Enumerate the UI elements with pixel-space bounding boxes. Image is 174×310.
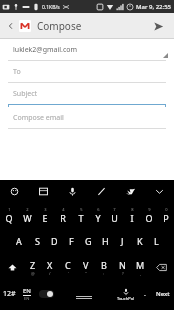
button[interactable]: Next <box>151 280 174 308</box>
staticText: " <box>85 271 87 276</box>
staticText: 12# <box>3 289 16 299</box>
staticText: Subject <box>13 89 38 99</box>
button[interactable]: L <box>148 228 165 254</box>
button[interactable]: S <box>28 228 46 254</box>
button[interactable]: 1 <box>0 202 18 228</box>
staticText: Q <box>5 212 13 224</box>
staticText: S <box>35 235 40 247</box>
button[interactable]: Backspace <box>149 254 174 280</box>
button[interactable]: N <box>113 254 131 280</box>
button[interactable]: Twitter <box>116 180 145 202</box>
button[interactable]: Space <box>56 280 112 308</box>
staticText: L <box>154 235 159 247</box>
staticText: B <box>101 259 107 271</box>
button[interactable]: 6 <box>89 202 106 228</box>
staticText: O <box>145 212 153 224</box>
staticText: 1 <box>8 207 11 212</box>
button[interactable]: D <box>46 228 63 254</box>
button[interactable]: Back <box>4 19 18 33</box>
staticText: E <box>42 212 48 224</box>
button[interactable]: C <box>59 254 77 280</box>
button[interactable]: K <box>131 228 148 254</box>
staticText: P <box>163 212 169 224</box>
staticText: @ <box>31 271 35 276</box>
staticText: / <box>49 271 51 276</box>
button[interactable]: M <box>131 254 149 280</box>
button[interactable]: 0 <box>157 202 174 228</box>
staticText: 3 <box>44 207 47 212</box>
staticText: W <box>23 212 32 224</box>
button[interactable]: 12# <box>0 280 18 308</box>
staticText: ? <box>122 271 124 276</box>
staticText: 5 <box>80 207 83 212</box>
button[interactable]: Toggle <box>36 280 56 308</box>
staticText: D <box>51 235 58 247</box>
staticText: EN <box>23 287 31 295</box>
staticText: 0.1KB/s <box>42 4 60 11</box>
button[interactable]: To <box>0 61 174 82</box>
staticText: C <box>65 259 71 271</box>
button[interactable]: B <box>95 254 113 280</box>
button[interactable]: EN <box>18 280 36 308</box>
button[interactable]: Handwriting <box>87 180 116 202</box>
staticText: 9 <box>148 207 151 212</box>
staticText: X <box>47 259 53 271</box>
button[interactable]: 2 <box>18 202 36 228</box>
button[interactable]: Z <box>24 254 41 280</box>
button[interactable]: Clipboard <box>29 180 58 202</box>
button[interactable]: TouchPal voice <box>112 280 139 308</box>
button[interactable]: F <box>63 228 80 254</box>
button[interactable]: V <box>77 254 95 280</box>
button[interactable]: 5 <box>72 202 89 228</box>
staticText: I <box>130 212 134 224</box>
button[interactable]: . <box>139 280 151 308</box>
button[interactable]: luklek2@gmail.com <box>0 39 174 60</box>
staticText: U <box>111 212 118 224</box>
staticText: 8 <box>131 207 134 212</box>
staticText: T <box>78 212 84 224</box>
button[interactable]: 4 <box>54 202 72 228</box>
staticText: G <box>85 235 92 247</box>
button[interactable]: Compose email <box>0 107 174 128</box>
staticText: TouchPal <box>117 296 134 301</box>
staticText: . <box>144 289 146 299</box>
staticText: V <box>83 259 89 271</box>
staticText: 2 <box>26 207 29 212</box>
staticText: 6 <box>97 207 100 212</box>
staticText: M <box>136 259 145 271</box>
button[interactable]: Hide keyboard <box>145 180 174 202</box>
button[interactable]: Emoji <box>0 180 29 202</box>
staticText: J <box>121 235 124 247</box>
button[interactable]: 3 <box>36 202 54 228</box>
staticText: Z <box>30 259 36 271</box>
button[interactable]: H <box>97 228 114 254</box>
button[interactable]: 9 <box>140 202 157 228</box>
staticText: K <box>137 235 143 247</box>
staticText: R <box>60 212 66 224</box>
button[interactable]: Send <box>148 16 168 36</box>
button[interactable]: X <box>41 254 59 280</box>
staticText: F <box>69 235 74 247</box>
staticText: Compose <box>37 19 82 33</box>
staticText: 4 <box>62 207 65 212</box>
staticText: ' <box>68 271 69 276</box>
staticText: Mar 9, 22:55 <box>136 3 172 11</box>
button[interactable]: Shift <box>0 254 24 280</box>
staticText: N <box>119 259 126 271</box>
staticText: , <box>140 271 142 276</box>
button[interactable]: 8 <box>123 202 140 228</box>
button[interactable]: A <box>10 228 28 254</box>
button[interactable]: 7 <box>106 202 123 228</box>
staticText: Compose email <box>13 113 64 123</box>
staticText: H <box>102 235 109 247</box>
button[interactable]: Voice input <box>58 180 87 202</box>
staticText: luklek2@gmail.com <box>13 45 78 55</box>
staticText: 7 <box>113 207 116 212</box>
button[interactable]: J <box>114 228 131 254</box>
staticText: Y <box>95 212 101 224</box>
staticText: A <box>16 235 22 247</box>
staticText: 0 <box>165 207 168 212</box>
button[interactable]: G <box>80 228 97 254</box>
button[interactable]: Subject <box>0 83 174 104</box>
staticText: EN <box>24 296 30 301</box>
